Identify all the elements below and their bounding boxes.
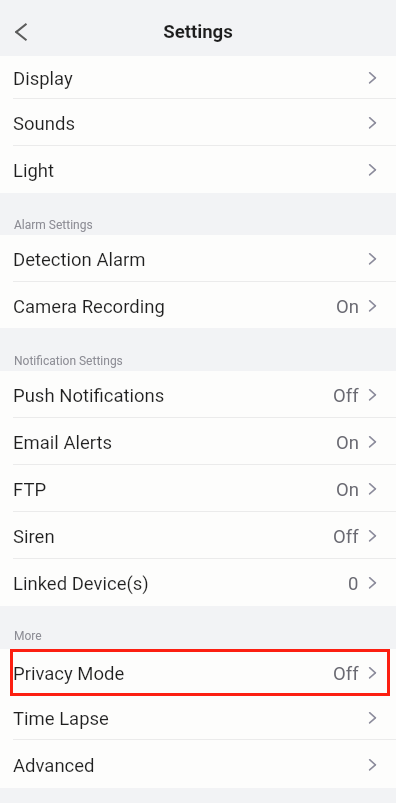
- button[interactable]: Privacy Mode: [0, 649, 396, 695]
- button[interactable]: Advanced: [0, 740, 396, 788]
- button[interactable]: Sounds: [0, 99, 396, 146]
- staticText: Light: [13, 160, 55, 182]
- staticText: Off: [333, 663, 359, 685]
- button[interactable]: Email Alerts: [0, 418, 396, 465]
- button[interactable]: Push Notifications: [0, 371, 396, 418]
- staticText: Push Notifications: [13, 385, 165, 407]
- staticText: Settings: [163, 21, 233, 43]
- staticText: Advanced: [13, 755, 95, 777]
- staticText: Siren: [13, 526, 55, 548]
- staticText: More: [14, 629, 42, 643]
- staticText: 0: [348, 573, 359, 595]
- staticText: Privacy Mode: [13, 663, 125, 685]
- staticText: FTP: [13, 479, 47, 501]
- button[interactable]: Light: [0, 146, 396, 193]
- button[interactable]: Back: [0, 11, 42, 53]
- staticText: Alarm Settings: [14, 218, 93, 232]
- staticText: Off: [333, 526, 359, 548]
- staticText: Time Lapse: [13, 708, 109, 730]
- staticText: Email Alerts: [13, 432, 113, 454]
- staticText: On: [336, 432, 359, 454]
- button[interactable]: FTP: [0, 465, 396, 512]
- staticText: Detection Alarm: [13, 249, 146, 271]
- button[interactable]: Camera Recording: [0, 282, 396, 328]
- button[interactable]: Detection Alarm: [0, 235, 396, 282]
- staticText: Linked Device(s): [13, 573, 149, 595]
- staticText: On: [336, 479, 359, 501]
- staticText: Camera Recording: [13, 296, 165, 318]
- button[interactable]: Siren: [0, 512, 396, 559]
- button[interactable]: Linked Device(s): [0, 559, 396, 606]
- staticText: On: [336, 296, 359, 318]
- staticText: Notification Settings: [14, 354, 123, 368]
- staticText: Sounds: [13, 113, 75, 135]
- staticText: Display: [13, 68, 73, 90]
- button[interactable]: Time Lapse: [0, 695, 396, 740]
- button[interactable]: Display: [0, 56, 396, 99]
- staticText: Off: [333, 385, 359, 407]
